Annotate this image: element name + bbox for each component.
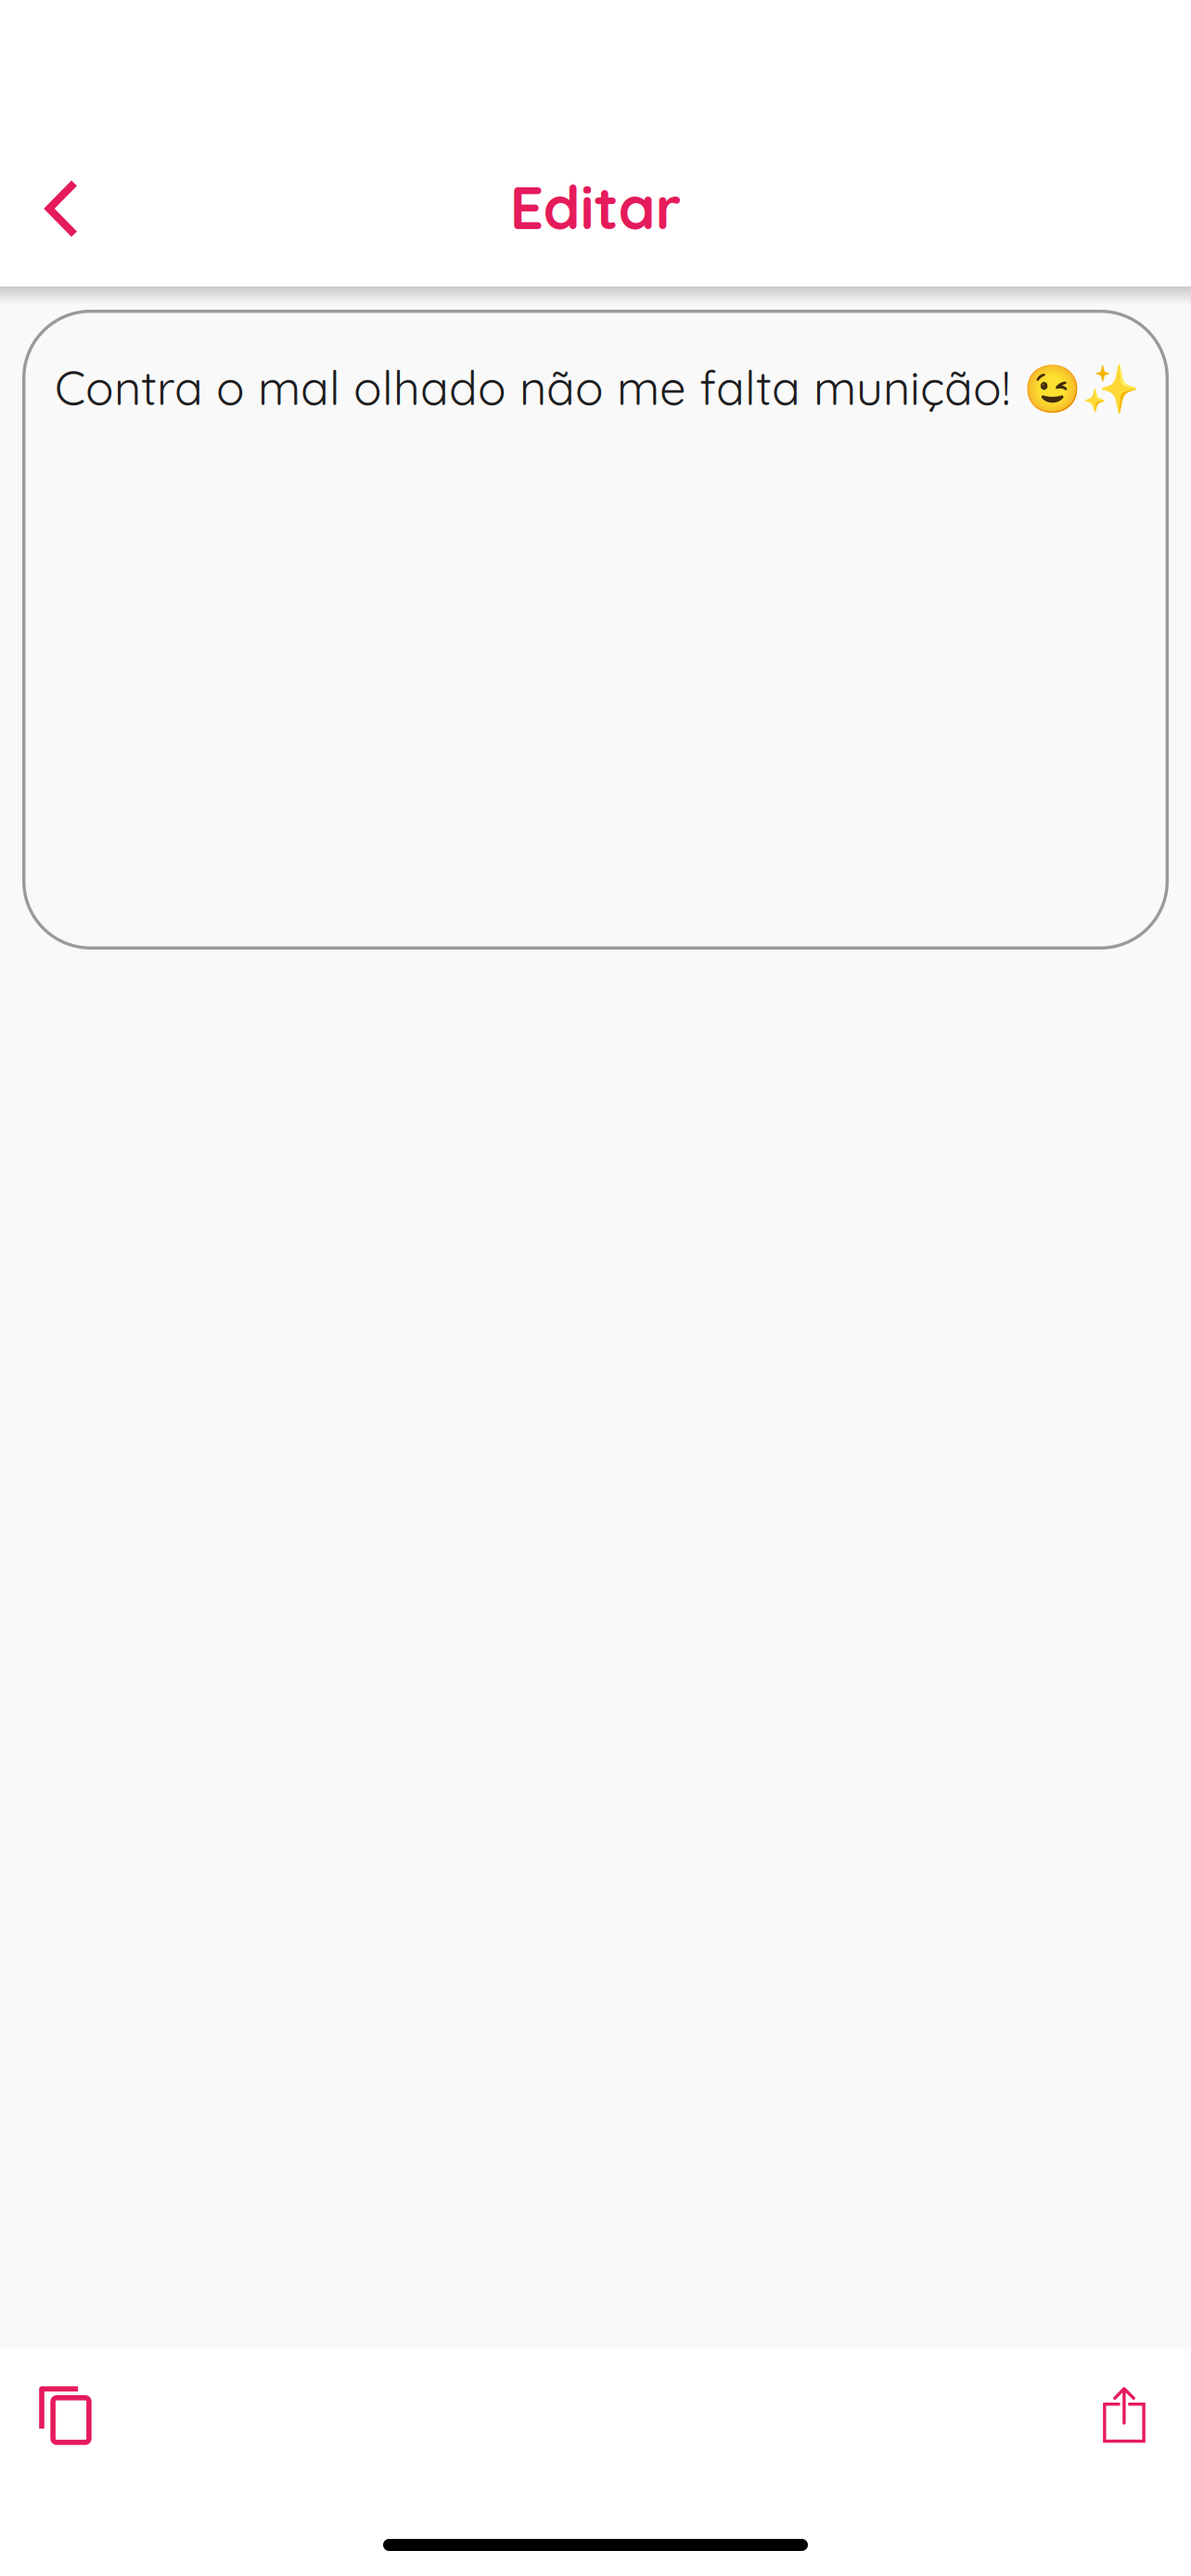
- button[interactable]: Copy: [11, 2365, 122, 2467]
- staticText: Editar: [510, 170, 681, 244]
- staticText: Contra o mal olhado não me falta munição…: [55, 358, 1140, 417]
- button[interactable]: Back: [6, 153, 118, 264]
- button[interactable]: Share: [1069, 2365, 1180, 2467]
